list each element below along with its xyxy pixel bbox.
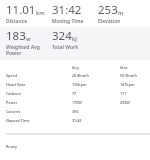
staticText: km — [36, 9, 45, 16]
staticText: Avg — [72, 65, 120, 70]
staticText: 292W — [120, 100, 130, 105]
button[interactable]: Heart Rate — [6, 80, 150, 89]
staticText: 170W — [72, 100, 120, 105]
button[interactable]: Elapsed Time — [6, 116, 150, 125]
staticText: Elapsed Time — [6, 118, 72, 123]
staticText: w — [26, 35, 31, 42]
staticText: Calories — [6, 109, 72, 114]
staticText: 31:42 — [52, 2, 82, 18]
staticText: Cadence — [6, 91, 72, 96]
staticText: 183 — [6, 28, 26, 44]
button[interactable]: Calories — [6, 107, 150, 116]
staticText: Total Work — [52, 44, 79, 51]
button[interactable]: Power — [6, 98, 150, 107]
staticText: 77 — [72, 91, 120, 96]
button[interactable]: Speed — [6, 71, 150, 80]
staticText: 130bpm — [72, 82, 120, 87]
staticText: Elevation — [98, 18, 121, 25]
staticText: Weighted Avg Power — [6, 44, 40, 57]
staticText: m — [118, 9, 124, 16]
staticText: 31:42 — [72, 118, 120, 123]
button[interactable]: Cadence — [6, 89, 150, 98]
staticText: 11.01 — [6, 2, 36, 18]
staticText: 324 — [52, 28, 72, 44]
staticText: 147bpm — [120, 82, 135, 87]
staticText: 356 — [72, 109, 120, 114]
staticText: 111 — [120, 91, 127, 96]
staticText: 20.8km/h — [72, 73, 120, 78]
staticText: Speed — [6, 73, 72, 78]
staticText: kJ — [72, 35, 77, 42]
staticText: Moving Time — [52, 18, 84, 25]
staticText: Power — [6, 100, 72, 105]
staticText: 253 — [98, 2, 118, 18]
staticText: Distance — [6, 18, 28, 25]
staticText: Heart Rate — [6, 82, 72, 87]
staticText: Max — [120, 65, 128, 70]
staticText: 59.9km/h — [120, 73, 137, 78]
staticText: Rouvy — [6, 144, 18, 149]
